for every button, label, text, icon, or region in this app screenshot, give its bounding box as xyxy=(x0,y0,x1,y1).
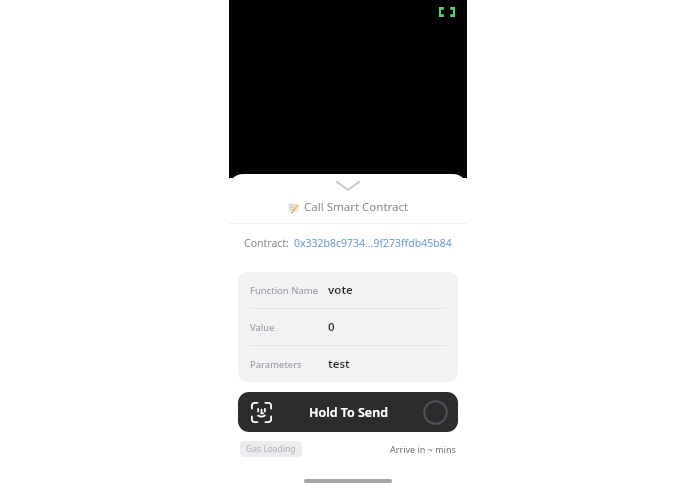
button[interactable]: Parameters xyxy=(238,346,458,382)
staticText: Gas Loading xyxy=(246,443,296,455)
button[interactable]: Collapse sheet xyxy=(328,179,368,193)
button[interactable]: Function Name xyxy=(238,272,458,309)
staticText: Function Name xyxy=(250,284,318,297)
staticText: Contract: xyxy=(244,236,289,250)
staticText: 0 xyxy=(328,319,335,335)
button[interactable]: Gas Loading xyxy=(240,441,302,457)
staticText: Arrive in ~ mins xyxy=(390,443,456,455)
button[interactable]: Value xyxy=(238,309,458,346)
staticText: test xyxy=(328,356,350,372)
staticText: vote xyxy=(328,282,353,298)
staticText: Hold To Send xyxy=(309,404,388,421)
staticText: Parameters xyxy=(250,358,302,371)
button[interactable]: Hold To Send xyxy=(238,392,458,432)
staticText: 0x332b8c9734…9f273ffdb45b84 xyxy=(294,236,452,250)
staticText: Value xyxy=(250,321,275,334)
staticText: Call Smart Contract xyxy=(304,199,409,215)
button[interactable]: Contract: xyxy=(229,235,467,251)
